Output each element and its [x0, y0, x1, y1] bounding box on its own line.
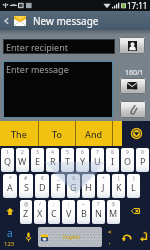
staticText: 160/1	[125, 68, 144, 78]
staticText: T	[65, 155, 71, 167]
staticText: (	[118, 175, 120, 182]
staticText: @	[24, 201, 29, 208]
button[interactable]: 2	[16, 148, 29, 172]
button[interactable]: Enter	[136, 224, 150, 250]
button[interactable]: Delete	[121, 198, 150, 224]
button[interactable]: &	[67, 174, 80, 198]
button[interactable]: Voice input	[19, 224, 37, 250]
button[interactable]: ~	[77, 200, 90, 224]
button[interactable]: Convert to multimedia message	[120, 78, 146, 94]
button[interactable]: €	[35, 174, 49, 198]
staticText: &	[72, 175, 76, 182]
staticText: 17:11	[127, 0, 148, 11]
button[interactable]: Punctuation	[102, 224, 118, 250]
button[interactable]: (	[112, 174, 125, 198]
staticText: B	[81, 207, 87, 219]
button[interactable]: /	[34, 200, 46, 224]
button[interactable]: _	[51, 174, 65, 198]
button[interactable]: Select contacts	[119, 37, 145, 54]
staticText: ~	[82, 201, 85, 208]
staticText: €	[41, 175, 44, 182]
staticText: /	[39, 201, 41, 208]
staticText: ?	[97, 201, 100, 208]
button[interactable]: Show more suggestions	[122, 121, 150, 146]
button[interactable]: Undo	[118, 224, 136, 250]
staticText: :	[53, 201, 55, 208]
button[interactable]: @	[20, 200, 32, 224]
staticText: -	[88, 175, 90, 182]
staticText: Z	[23, 207, 29, 219]
button[interactable]: 4	[46, 148, 59, 172]
staticText: G	[70, 181, 77, 193]
button[interactable]: 1	[1, 148, 14, 172]
button[interactable]: 7	[91, 148, 104, 172]
staticText: 5	[66, 149, 69, 156]
staticText: A	[7, 181, 13, 193]
staticText: +	[102, 175, 105, 182]
staticText: 8	[111, 149, 114, 156]
staticText: 9	[126, 149, 129, 156]
staticText: K	[116, 181, 122, 193]
staticText: Q	[4, 155, 12, 167]
staticText: R	[50, 155, 56, 167]
button[interactable]: 0	[136, 148, 149, 172]
staticText: X	[37, 207, 43, 219]
staticText: To	[52, 128, 62, 140]
button[interactable]: And	[76, 121, 112, 146]
staticText: a	[7, 226, 13, 240]
staticText: S	[24, 181, 29, 193]
button[interactable]: *	[3, 174, 17, 198]
staticText: $	[112, 201, 115, 208]
button[interactable]: :	[48, 200, 60, 224]
staticText: 3	[36, 149, 39, 156]
button[interactable]: Space	[38, 227, 102, 247]
staticText: E	[35, 155, 41, 167]
staticText: F	[56, 181, 61, 193]
button[interactable]: ;	[62, 200, 75, 224]
button[interactable]: Enter recipient	[3, 39, 115, 54]
staticText: D	[39, 181, 46, 193]
staticText: U	[94, 155, 101, 167]
button[interactable]: Enter message	[3, 61, 113, 118]
button[interactable]: 6	[76, 148, 89, 172]
button[interactable]: 5	[61, 148, 74, 172]
staticText: New message	[33, 14, 99, 28]
staticText: C	[51, 207, 57, 219]
button[interactable]: To	[39, 121, 75, 146]
button[interactable]: $	[107, 200, 120, 224]
staticText: 7	[96, 149, 99, 156]
button[interactable]: -	[82, 174, 95, 198]
button[interactable]: Navigate up	[0, 11, 12, 30]
staticText: Enter recipient	[6, 41, 68, 53]
staticText: Y	[80, 155, 86, 167]
staticText: P	[140, 155, 146, 167]
staticText: I	[111, 155, 115, 167]
staticText: J	[102, 181, 105, 193]
staticText: And	[85, 128, 103, 140]
staticText: 0	[141, 149, 144, 156]
staticText: 6	[81, 149, 84, 156]
staticText: *	[9, 175, 12, 182]
staticText: The	[11, 128, 27, 140]
button[interactable]: #	[19, 174, 33, 198]
staticText: W	[18, 155, 27, 167]
button[interactable]: )	[127, 174, 140, 198]
button[interactable]: Symbols	[0, 224, 19, 250]
button[interactable]: The	[0, 121, 38, 146]
staticText: 1	[6, 149, 9, 156]
staticText: English	[63, 234, 81, 241]
staticText: N	[95, 207, 102, 219]
button[interactable]: Attach file	[120, 101, 146, 118]
button[interactable]: +	[97, 174, 110, 198]
button[interactable]: 9	[121, 148, 134, 172]
button[interactable]: 3	[31, 148, 44, 172]
staticText: _	[57, 175, 60, 182]
staticText: )	[133, 175, 135, 182]
staticText: #	[24, 175, 28, 182]
button[interactable]: ?	[92, 200, 105, 224]
staticText: 123	[4, 240, 15, 248]
button[interactable]: Shift	[0, 198, 19, 224]
staticText: ,	[109, 238, 111, 246]
staticText: 2	[21, 149, 24, 156]
button[interactable]: 8	[106, 148, 119, 172]
